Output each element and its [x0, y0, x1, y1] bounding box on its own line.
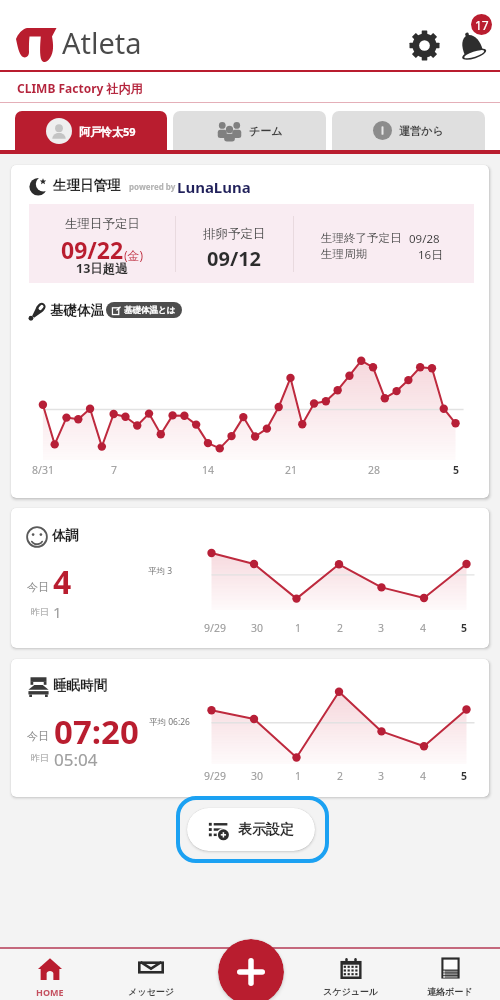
staticText: スケジュール	[323, 986, 379, 997]
staticText: 13日超過	[76, 260, 128, 277]
staticText: 平均 3	[148, 565, 173, 577]
staticText: 生理日予定日	[65, 216, 140, 232]
staticText: 今日	[27, 729, 49, 743]
staticText: Atleta	[62, 23, 142, 62]
staticText: 21	[279, 463, 303, 477]
staticText: HOME	[36, 986, 64, 998]
button[interactable]: HOME	[2, 950, 98, 1000]
staticText: 09/12	[207, 245, 262, 272]
staticText: LunaLuna	[177, 177, 251, 197]
staticText: 07:20	[54, 709, 139, 754]
staticText: 4	[409, 769, 437, 783]
staticText: 阿戸怜太59	[79, 124, 136, 139]
button[interactable]: 体調	[11, 508, 489, 648]
staticText: 09/22	[61, 234, 124, 265]
staticText: 生理周期	[321, 247, 367, 261]
staticText: 生理終了予定日	[321, 231, 402, 245]
staticText: 体調	[52, 527, 79, 544]
staticText: 生理日管理	[53, 177, 121, 194]
staticText: 16日	[418, 247, 443, 263]
staticText: 09/28	[409, 231, 440, 247]
button[interactable]: Notifications	[450, 10, 498, 58]
button[interactable]: Add	[218, 939, 284, 1000]
button[interactable]: 連絡ボード	[402, 950, 498, 1000]
staticText: 4	[409, 621, 437, 635]
staticText: 8/31	[31, 463, 55, 477]
staticText: 9/29	[201, 769, 229, 783]
button[interactable]: 基礎体温とは	[106, 302, 182, 318]
staticText: powered by	[129, 181, 176, 192]
button[interactable]: 阿戸怜太59	[15, 111, 167, 150]
staticText: 運営から	[399, 124, 444, 138]
button[interactable]: 睡眠時間	[11, 659, 489, 797]
staticText: 基礎体温とは	[124, 305, 176, 316]
button[interactable]: メッセージ	[103, 950, 199, 1000]
button[interactable]: 表示設定	[187, 808, 315, 851]
staticText: メッセージ	[128, 986, 174, 997]
staticText: 28	[362, 463, 386, 477]
staticText: 2	[326, 621, 354, 635]
staticText: 4	[53, 560, 72, 604]
staticText: 14	[196, 463, 220, 477]
staticText: 2	[326, 769, 354, 783]
staticText: 1	[284, 769, 312, 783]
staticText: 05:04	[54, 748, 98, 771]
staticText: 表示設定	[238, 821, 294, 839]
staticText: 30	[243, 769, 271, 783]
staticText: 排卵予定日	[203, 226, 266, 242]
staticText: CLIMB Factory 社内用	[17, 80, 143, 96]
staticText: チーム	[249, 124, 283, 138]
staticText: 基礎体温	[50, 302, 104, 319]
staticText: 昨日	[31, 606, 49, 617]
staticText: 3	[367, 769, 395, 783]
staticText: 17	[475, 17, 489, 33]
staticText: 5	[444, 463, 468, 477]
staticText: 30	[243, 621, 271, 635]
staticText: 連絡ボード	[427, 986, 473, 997]
button[interactable]: スケジュール	[303, 950, 399, 1000]
staticText: 9/29	[201, 621, 229, 635]
button[interactable]: チーム	[173, 111, 326, 150]
staticText: 3	[367, 621, 395, 635]
staticText: (金)	[124, 247, 144, 263]
staticText: 今日	[27, 580, 49, 594]
staticText: 1	[284, 621, 312, 635]
staticText: 1	[53, 602, 62, 622]
staticText: 5	[450, 621, 478, 635]
staticText: 昨日	[31, 752, 49, 763]
button[interactable]: 運営から	[332, 111, 485, 150]
staticText: 5	[450, 769, 478, 783]
button[interactable]: Settings	[406, 27, 443, 64]
staticText: 睡眠時間	[53, 677, 107, 694]
staticText: 平均 06:26	[149, 716, 190, 728]
staticText: 7	[102, 463, 126, 477]
